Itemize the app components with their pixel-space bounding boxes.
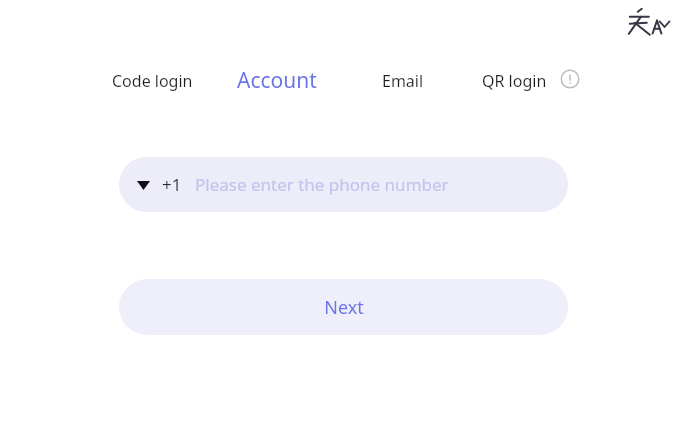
staticText: Code login xyxy=(112,70,193,92)
staticText: Account xyxy=(237,66,317,95)
button[interactable]: Select country code xyxy=(132,174,154,196)
button[interactable]: Next xyxy=(119,279,568,335)
staticText: Next xyxy=(324,295,364,320)
staticText: +1 xyxy=(162,173,182,196)
button[interactable]: QR login xyxy=(480,66,549,96)
staticText: Email xyxy=(382,70,424,92)
button[interactable]: Email xyxy=(380,66,426,96)
button[interactable]: Account xyxy=(235,62,319,99)
button[interactable]: Select country code xyxy=(119,157,568,212)
button[interactable]: Code login xyxy=(110,66,195,96)
staticText: QR login xyxy=(482,70,547,92)
staticText: Please enter the phone number xyxy=(195,173,449,196)
button[interactable]: Change language xyxy=(625,7,671,41)
button[interactable]: QR login info xyxy=(559,68,581,90)
